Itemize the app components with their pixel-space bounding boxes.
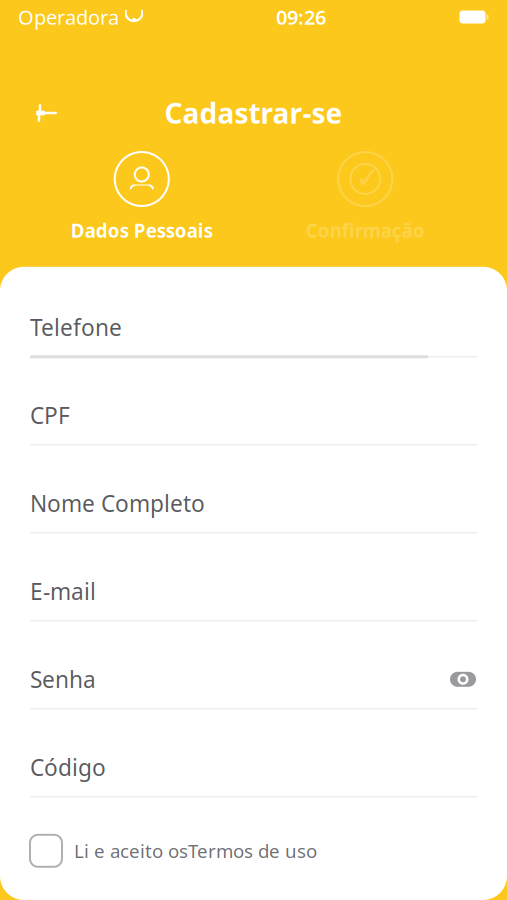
button[interactable]: Senha (30, 641, 477, 729)
staticText: CPF (30, 400, 70, 430)
button[interactable]: Telefone (30, 289, 477, 377)
staticText: Cadastrar-se (164, 94, 342, 132)
button[interactable]: CPF (30, 377, 477, 465)
staticText: Operadora (18, 4, 119, 30)
staticText: Confirmação (306, 218, 425, 243)
staticText: Código (30, 752, 106, 782)
button[interactable]: Nome Completo (30, 465, 477, 553)
button[interactable]: Back (22, 92, 72, 134)
staticText: ✓ (356, 161, 381, 194)
staticText: Li e aceito osTermos de uso (74, 838, 317, 863)
button[interactable]: Código (30, 729, 477, 817)
button[interactable]: E-mail (30, 553, 477, 641)
staticText: Nome Completo (30, 488, 205, 518)
staticText: Telefone (30, 312, 122, 342)
staticText: E-mail (30, 576, 96, 606)
button[interactable]: Li e aceito osTermos de uso (30, 827, 477, 875)
staticText: 09:26 (276, 4, 326, 30)
staticText: Senha (30, 664, 96, 694)
staticText: Dados Pessoais (71, 218, 213, 243)
